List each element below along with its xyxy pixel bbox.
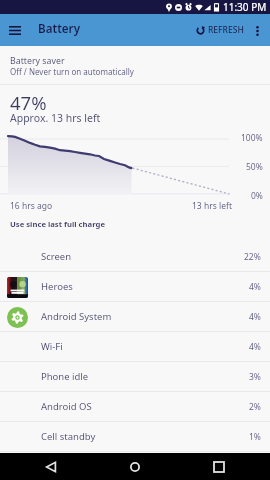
staticText: Use since last full charge [10, 219, 105, 229]
staticText: 4% [249, 311, 261, 323]
staticText: 4% [249, 341, 261, 353]
button[interactable]: Heroes [0, 272, 270, 301]
staticText: 47% [10, 90, 47, 115]
button[interactable]: Cell standby [0, 422, 270, 451]
staticText: Heroes [41, 280, 73, 293]
staticText: Screen [41, 250, 72, 263]
button[interactable]: Android System [0, 302, 270, 331]
button[interactable]: Android OS [0, 392, 270, 421]
staticText: Off / Never turn on automatically [10, 66, 134, 77]
staticText: 3% [249, 371, 261, 383]
button[interactable]: Navigation menu [0, 15, 30, 45]
staticText: Approx. 13 hrs left [10, 111, 101, 125]
staticText: REFRESH [208, 24, 244, 36]
staticText: Android System [41, 310, 112, 323]
staticText: 100% [241, 132, 263, 144]
staticText: 50% [246, 161, 263, 173]
staticText: 11:30 PM [223, 0, 267, 14]
staticText: Phone idle [41, 370, 89, 383]
staticText: Cell standby [41, 430, 96, 443]
staticText: 4% [249, 281, 261, 293]
staticText: 0% [251, 190, 263, 202]
staticText: 1% [249, 431, 261, 443]
staticText: Android OS [41, 400, 92, 413]
button[interactable]: Back [27, 453, 75, 480]
staticText: 13 hrs left [192, 200, 232, 212]
button[interactable]: Recent apps [195, 453, 243, 480]
staticText: 16 hrs ago [10, 200, 53, 212]
button[interactable]: Home [111, 453, 159, 480]
staticText: Wi-Fi [41, 340, 63, 353]
button[interactable]: Screen [0, 242, 270, 271]
button[interactable]: More options [247, 20, 268, 41]
button[interactable]: Wi-Fi [0, 332, 270, 361]
button[interactable]: Phone idle [0, 362, 270, 391]
staticText: Battery [38, 21, 81, 37]
staticText: 2% [249, 401, 261, 413]
staticText: 22% [244, 251, 261, 263]
button[interactable]: REFRESH [193, 18, 247, 42]
staticText: Battery saver [10, 55, 65, 67]
button[interactable]: Battery saver [0, 46, 270, 84]
